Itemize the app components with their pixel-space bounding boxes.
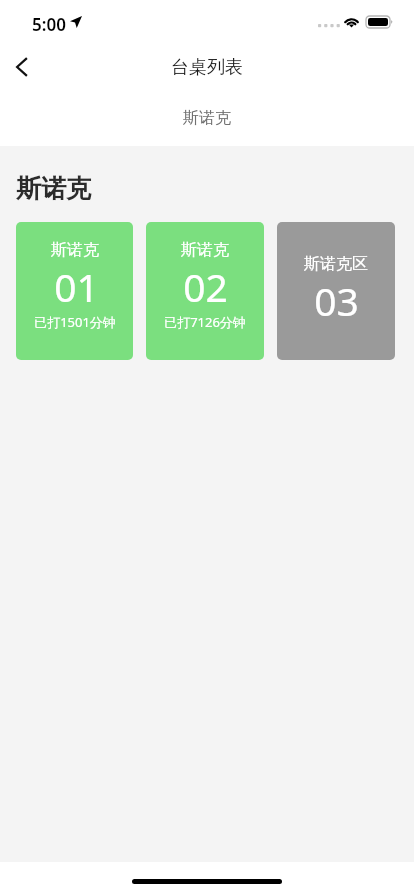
- staticText: 01: [54, 260, 99, 313]
- staticText: 5:00: [32, 13, 66, 36]
- staticText: 已打7126分钟: [164, 313, 246, 331]
- staticText: 斯诺克: [181, 240, 229, 260]
- staticText: 已打1501分钟: [34, 313, 116, 331]
- staticText: 斯诺克: [183, 108, 231, 128]
- staticText: 斯诺克区: [304, 254, 368, 274]
- staticText: 02: [183, 260, 228, 313]
- button[interactable]: 斯诺克: [146, 222, 264, 360]
- button[interactable]: 斯诺克: [157, 101, 257, 135]
- staticText: 斯诺克: [16, 173, 91, 204]
- staticText: 台桌列表: [171, 56, 243, 79]
- button[interactable]: 斯诺克区: [277, 222, 395, 360]
- button[interactable]: 斯诺克: [16, 222, 133, 360]
- staticText: 03: [314, 274, 359, 327]
- button[interactable]: Back: [0, 46, 42, 88]
- staticText: 斯诺克: [51, 240, 99, 260]
